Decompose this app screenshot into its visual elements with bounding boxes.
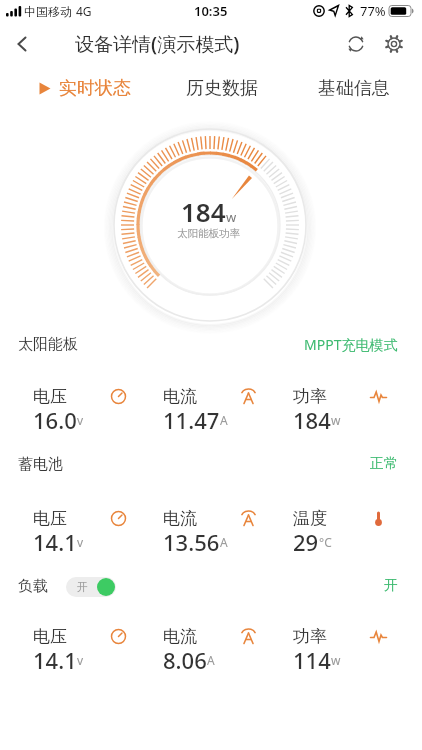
staticText: 13.56 [163, 527, 220, 551]
staticText: 功率 [293, 626, 327, 647]
button[interactable]: 基础信息 [318, 66, 390, 110]
staticText: 14.1 [33, 527, 77, 551]
staticText: w [331, 652, 341, 668]
staticText: 太阳能板功率 [177, 227, 240, 240]
staticText: 电流 [163, 508, 197, 529]
button[interactable] [343, 31, 369, 57]
staticText: 184 [181, 194, 226, 229]
staticText: 实时状态 [59, 77, 131, 100]
staticText: 114 [293, 645, 331, 669]
staticText: 太阳能板 [18, 335, 78, 354]
staticText: 开 [77, 580, 88, 594]
button[interactable] [288, 502, 398, 560]
staticText: 电压 [33, 386, 67, 407]
staticText: 温度 [293, 508, 327, 529]
staticText: A [207, 652, 215, 668]
staticText: 电流 [163, 626, 197, 647]
button[interactable]: 开 [66, 577, 116, 597]
button[interactable] [28, 502, 138, 560]
staticText: 电压 [33, 626, 67, 647]
staticText: 14.1 [33, 645, 77, 669]
button[interactable] [381, 31, 407, 57]
button[interactable]: 实时状态 [38, 66, 131, 110]
staticText: A [220, 534, 228, 550]
staticText: v [77, 652, 84, 668]
staticText: 开 [384, 577, 398, 595]
button[interactable] [28, 380, 138, 438]
staticText: 中国移动 [24, 4, 72, 19]
staticText: w [226, 208, 237, 226]
staticText: 8.06 [163, 645, 207, 669]
staticText: v [77, 412, 84, 428]
staticText: A [220, 412, 228, 428]
staticText: 电流 [163, 386, 197, 407]
staticText: 11.47 [163, 405, 220, 429]
staticText: w [331, 412, 341, 428]
staticText: 29 [293, 527, 319, 551]
button[interactable] [158, 502, 268, 560]
button[interactable] [288, 620, 398, 678]
staticText: 负载 [18, 577, 48, 596]
staticText: MPPT充电模式 [304, 335, 398, 354]
staticText: 77% [360, 2, 386, 20]
staticText: 16.0 [33, 405, 77, 429]
staticText: 10:35 [194, 2, 228, 20]
staticText: 设备详情(演示模式) [75, 31, 240, 57]
staticText: 正常 [370, 455, 398, 473]
button[interactable] [158, 380, 268, 438]
staticText: 功率 [293, 386, 327, 407]
button[interactable] [6, 28, 38, 60]
staticText: 基础信息 [318, 77, 390, 100]
staticText: 电压 [33, 508, 67, 529]
staticText: 蓄电池 [18, 455, 63, 474]
button[interactable] [28, 620, 138, 678]
button[interactable] [158, 620, 268, 678]
button[interactable] [288, 380, 398, 438]
staticText: 184 [293, 405, 331, 429]
staticText: 历史数据 [186, 77, 258, 100]
staticText: 4G [76, 3, 92, 19]
staticText: v [77, 534, 84, 550]
button[interactable]: 历史数据 [186, 66, 258, 110]
staticText: °C [319, 534, 332, 550]
